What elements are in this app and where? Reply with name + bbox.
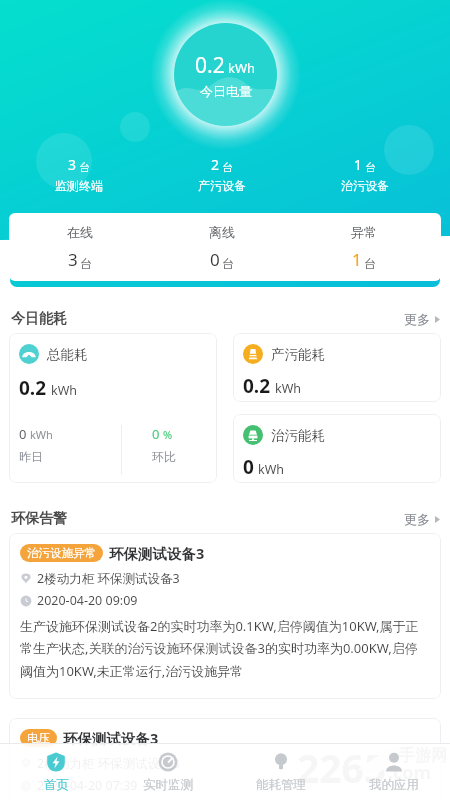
button[interactable]: 更多 [404,311,440,327]
staticText: 0 [243,454,254,480]
staticText: 电压 [27,731,50,745]
staticText: 0.2 [243,373,271,399]
staticText: 总能耗 [47,346,88,363]
button[interactable]: 治污设施异常 [9,533,441,699]
staticText: 台 [365,160,376,174]
staticText: 生产设施环保测试设备2的实时功率为0.1KW,启停阈值为10KW,属于正常生产状… [20,617,430,680]
staticText: 异常 [351,224,377,240]
staticText: 实时监测 [143,777,193,793]
staticText: 治污设备 [341,178,389,193]
button[interactable]: 电压 [9,718,441,800]
staticText: 监测终端 [55,178,103,193]
staticText: 台 [364,256,376,271]
staticText: 昨日 [19,449,43,464]
staticText: 环保告警 [11,510,67,528]
button[interactable]: 总能耗 [9,333,217,483]
button[interactable]: 产污能耗 [233,333,441,402]
staticText: 2楼动力柜 环保测试设备3 [37,570,180,587]
staticText: 产污设备 [198,178,246,193]
staticText: 1 [354,155,363,174]
staticText: 今日电量 [200,83,252,99]
staticText: 产污能耗 [271,346,325,363]
staticText: 台 [222,160,233,174]
staticText: 环比 [152,449,176,464]
staticText: 2265 [297,741,387,794]
staticText: 台 [79,160,90,174]
staticText: 2 [211,155,220,174]
staticText: 今日能耗 [11,310,67,328]
button[interactable]: 能耗管理 [224,744,337,800]
staticText: kWh [30,427,53,442]
staticText: 3 [68,155,77,174]
staticText: 0 [19,425,27,443]
button[interactable]: 实时监测 [112,744,224,800]
button[interactable]: 更多 [404,511,440,527]
button[interactable]: 在线 [9,213,441,281]
staticText: 治污能耗 [271,427,325,444]
staticText: 环保测试设备3 [109,543,205,563]
staticText: 在线 [67,224,93,240]
staticText: kWh [51,382,78,399]
staticText: .com [388,760,432,785]
staticText: kWh [258,461,285,478]
staticText: 0 [152,425,160,443]
staticText: % [163,427,173,442]
staticText: 手游网 [399,746,447,766]
staticText: 治污设施异常 [27,546,96,560]
button[interactable]: 治污能耗 [233,414,441,483]
staticText: kWh [228,59,256,77]
staticText: 台 [222,256,234,271]
staticText: 首页 [44,777,69,793]
staticText: 2020-04-20 09:09 [37,592,138,609]
staticText: 0.2 [195,51,225,80]
staticText: 环保测试设备3 [63,728,159,748]
staticText: 我的应用 [369,777,419,793]
staticText: 0.2 [19,375,47,401]
staticText: 2楼动力柜 环保测试设备3 [37,755,180,772]
staticText: 0 [210,248,220,271]
button[interactable]: 首页 [0,744,112,800]
staticText: 1 [352,248,362,271]
staticText: 更多 [404,311,430,327]
staticText: 能耗管理 [256,777,306,793]
staticText: 2020-04-20 07:39 [37,777,138,794]
staticText: 3 [68,248,78,271]
staticText: 离线 [209,224,235,240]
staticText: kWh [275,380,302,397]
staticText: 更多 [404,511,430,527]
staticText: 台 [80,256,92,271]
button[interactable]: 我的应用 [337,744,450,800]
